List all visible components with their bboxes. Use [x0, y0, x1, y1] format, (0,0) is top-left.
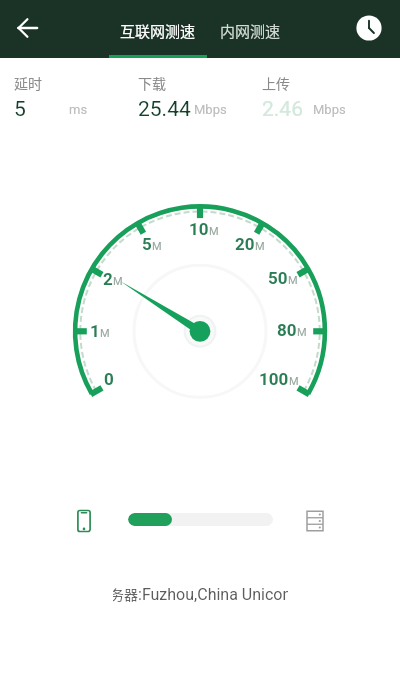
staticText: Mbps — [313, 102, 346, 117]
staticText: 5 — [142, 234, 152, 254]
staticText: 10 — [189, 219, 209, 239]
staticText: 50 — [268, 268, 288, 288]
staticText: 2.46 — [262, 97, 303, 122]
staticText: 25.44 — [138, 97, 191, 122]
staticText: 服务器 — [113, 584, 138, 604]
button[interactable]: History — [347, 6, 391, 50]
staticText: ms — [69, 102, 88, 117]
staticText: M — [297, 326, 307, 339]
button[interactable]: Back — [6, 6, 50, 50]
staticText: M — [209, 225, 219, 238]
staticText: 2 — [103, 269, 113, 289]
button[interactable] — [128, 513, 273, 526]
button[interactable]: 互联网测速 — [109, 3, 207, 58]
staticText: 0 — [104, 369, 114, 389]
staticText: 下载 — [138, 73, 166, 93]
staticText: 延时 — [14, 73, 42, 93]
staticText: M — [152, 240, 162, 253]
button[interactable]: 内网测速 — [211, 3, 289, 58]
staticText: 上传 — [262, 73, 290, 93]
staticText: :Fuzhou,China Unicom — [138, 585, 288, 604]
staticText: M — [255, 240, 265, 253]
staticText: 100 — [259, 369, 289, 389]
button[interactable]: Phone — [62, 499, 106, 543]
staticText: M — [100, 327, 110, 340]
staticText: 内网测速 — [220, 20, 281, 42]
staticText: 1 — [90, 321, 100, 341]
staticText: Mbps — [194, 102, 227, 117]
staticText: 互联网测速 — [120, 20, 196, 42]
staticText: 80 — [277, 320, 297, 340]
staticText: M — [289, 375, 299, 388]
staticText: M — [288, 274, 298, 287]
staticText: M — [113, 275, 123, 288]
staticText: 20 — [235, 234, 255, 254]
button[interactable]: Server — [293, 499, 337, 543]
staticText: 5 — [14, 97, 26, 122]
